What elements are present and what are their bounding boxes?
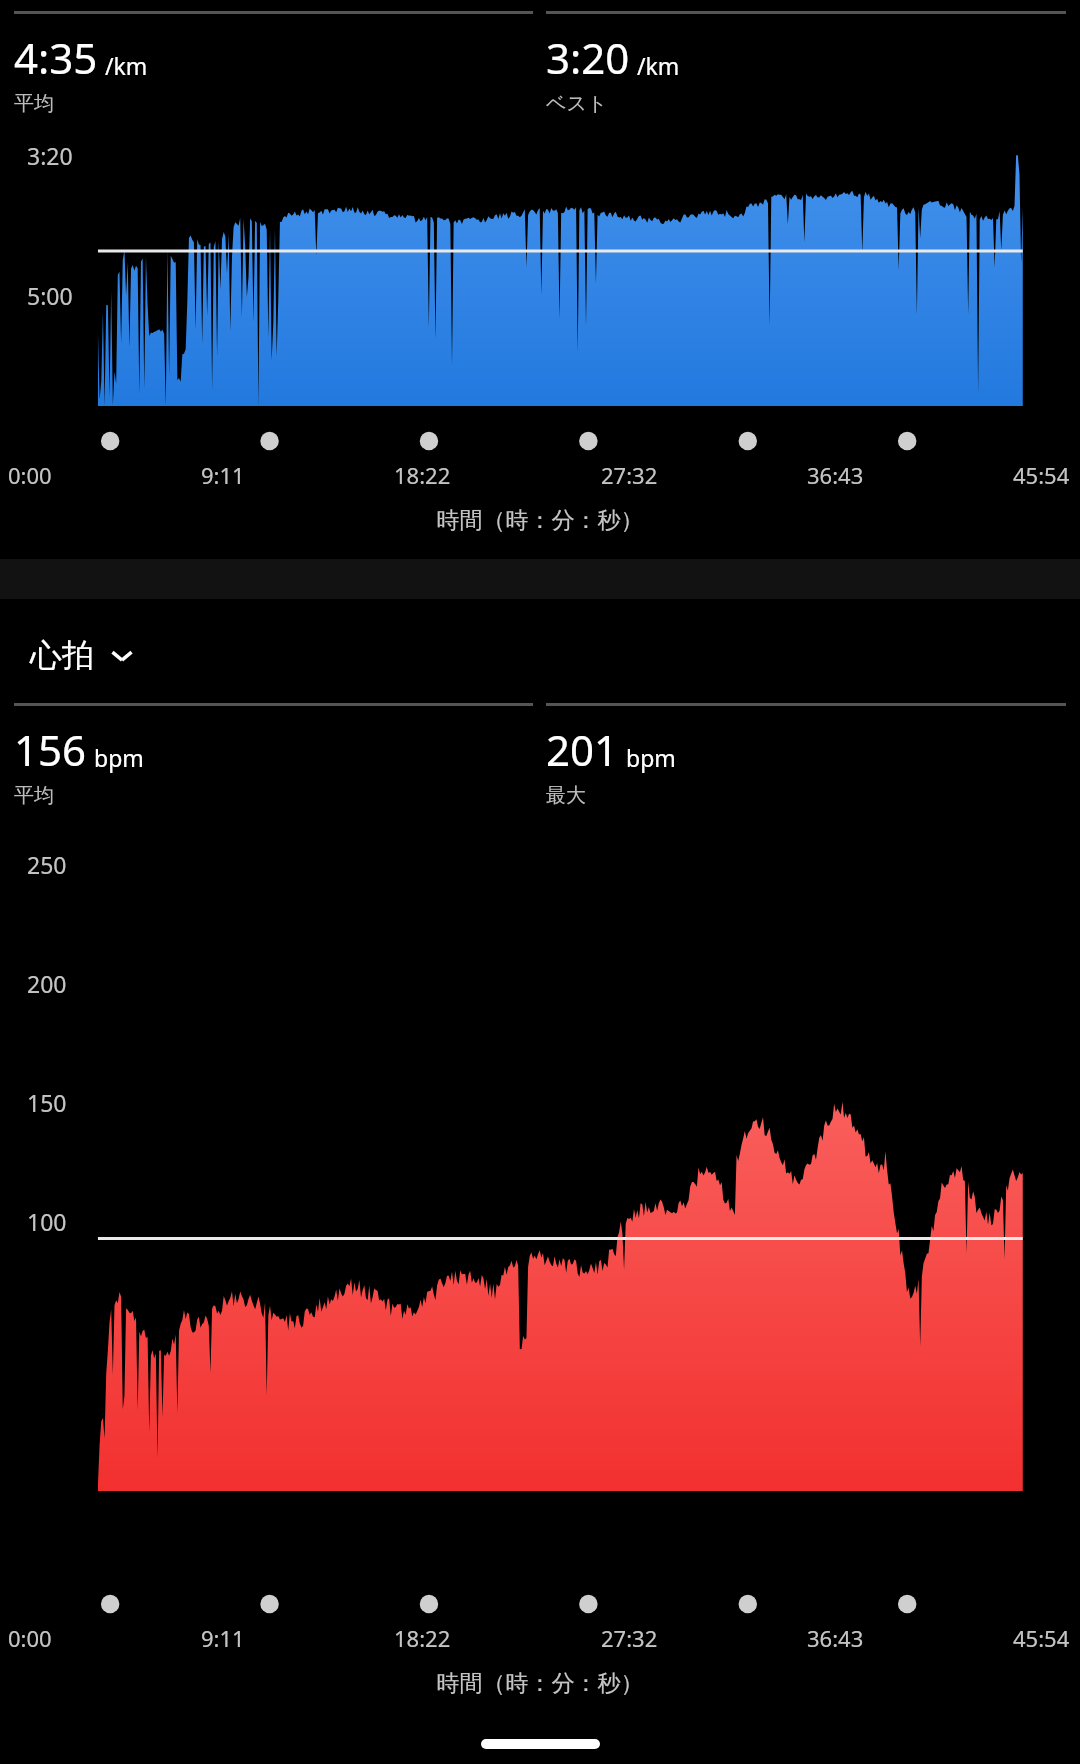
staticText: 45:54 (1013, 460, 1070, 490)
staticText: 時間（時：分：秒） (0, 506, 1080, 535)
staticText: 150 (27, 1087, 67, 1118)
staticText: 最大 (546, 783, 586, 808)
staticText: 201 (546, 721, 619, 778)
staticText: 36:43 (807, 460, 864, 490)
staticText: 18:22 (394, 460, 451, 490)
staticText: 心拍 (30, 635, 94, 675)
staticText: /km (105, 50, 148, 81)
other: Expand heart rate (108, 641, 136, 669)
staticText: ベスト (546, 91, 608, 116)
staticText: /km (637, 50, 680, 81)
staticText: 27:32 (601, 460, 658, 490)
staticText: 4:35 (14, 29, 98, 86)
button[interactable]: 心拍 (24, 629, 142, 681)
staticText: 45:54 (1013, 1623, 1070, 1653)
staticText: 時間（時：分：秒） (0, 1669, 1080, 1698)
staticText: 27:32 (601, 1623, 658, 1653)
staticText: 3:20 (27, 140, 73, 171)
staticText: 250 (27, 849, 67, 880)
staticText: 平均 (14, 783, 54, 808)
staticText: 3:20 (546, 29, 630, 86)
staticText: 156 (14, 721, 87, 778)
staticText: 0:00 (8, 460, 52, 490)
staticText: 9:11 (201, 1623, 245, 1653)
staticText: 100 (27, 1206, 67, 1237)
staticText: 平均 (14, 91, 54, 116)
staticText: 5:00 (27, 280, 73, 311)
staticText: 200 (27, 968, 67, 999)
staticText: bpm (94, 742, 144, 773)
staticText: 0:00 (8, 1623, 52, 1653)
staticText: 18:22 (394, 1623, 451, 1653)
staticText: 9:11 (201, 460, 245, 490)
staticText: bpm (626, 742, 676, 773)
staticText: 36:43 (807, 1623, 864, 1653)
